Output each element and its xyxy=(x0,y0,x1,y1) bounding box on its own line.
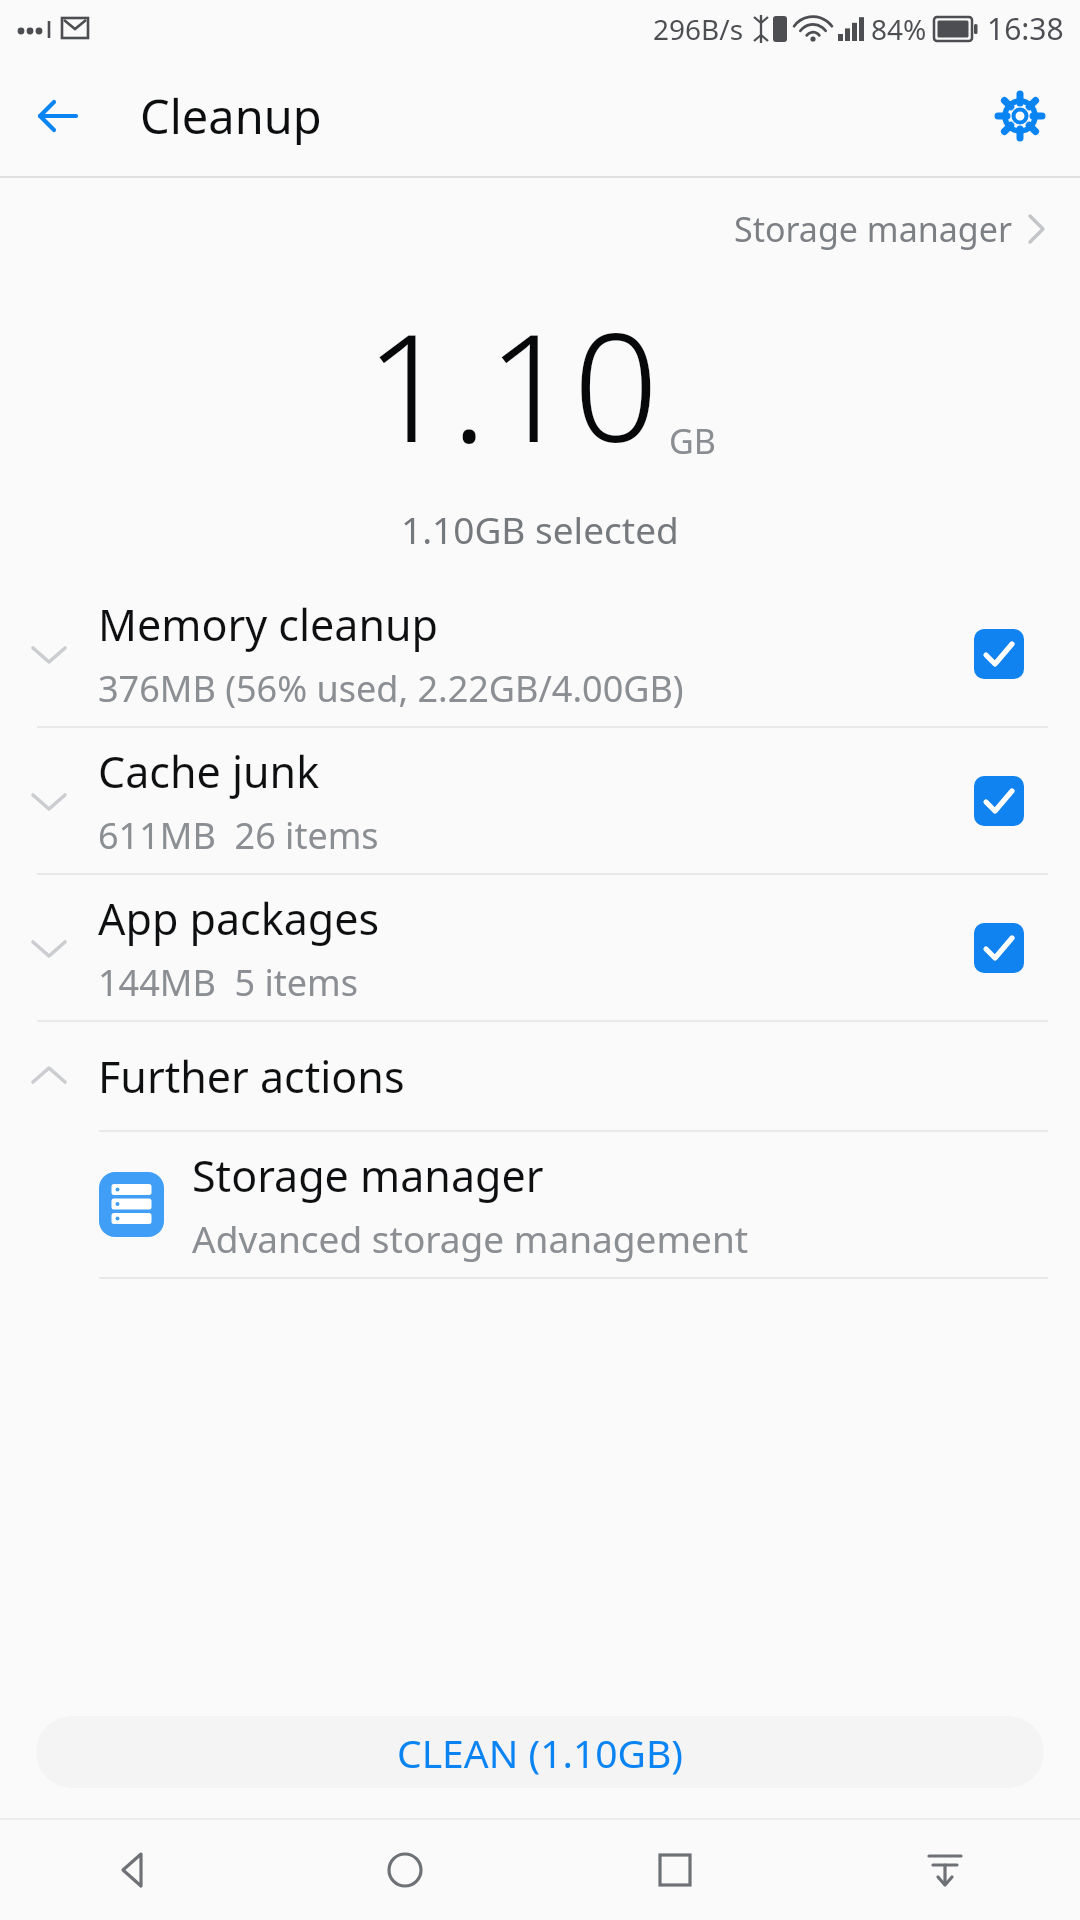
button[interactable]: Back xyxy=(0,1820,270,1920)
button[interactable]: Selected xyxy=(965,914,1033,982)
button[interactable]: Storage manager xyxy=(726,196,1056,262)
staticText: GB xyxy=(669,418,716,464)
button[interactable]: Storage manager xyxy=(0,1132,1080,1277)
staticText: Cache junk xyxy=(98,742,320,801)
button[interactable]: Cache junk xyxy=(0,728,1080,873)
staticText: 84% xyxy=(871,10,927,48)
button[interactable]: CLEAN (1.10GB) xyxy=(36,1716,1044,1788)
staticText: CLEAN (1.10GB) xyxy=(397,1726,683,1779)
staticText: 296B/s xyxy=(653,10,744,48)
button[interactable]: Hide xyxy=(810,1820,1080,1920)
button[interactable]: Selected xyxy=(965,620,1033,688)
staticText: 1.10 xyxy=(365,282,659,486)
staticText: 144MB 5 items xyxy=(98,958,358,1007)
staticText: Cleanup xyxy=(140,84,322,148)
staticText: 376MB (56% used, 2.22GB/4.00GB) xyxy=(98,664,684,713)
staticText: 611MB 26 items xyxy=(98,811,379,860)
button[interactable]: Back xyxy=(22,80,94,152)
button[interactable]: Home xyxy=(270,1820,540,1920)
staticText: Storage manager xyxy=(734,206,1012,252)
button[interactable]: Recents xyxy=(540,1820,810,1920)
staticText: Further actions xyxy=(98,1047,405,1106)
staticText: 16:38 xyxy=(987,8,1064,49)
button[interactable]: App packages xyxy=(0,875,1080,1020)
button[interactable]: Memory cleanup xyxy=(0,581,1080,726)
button[interactable]: Settings xyxy=(982,78,1058,154)
staticText: Advanced storage management xyxy=(192,1213,749,1263)
staticText: App packages xyxy=(98,889,380,948)
staticText: Memory cleanup xyxy=(98,595,439,654)
staticText: Storage manager xyxy=(192,1146,544,1205)
button[interactable]: Further actions xyxy=(0,1022,1080,1130)
button[interactable]: Selected xyxy=(965,767,1033,835)
staticText: 1.10GB selected xyxy=(401,504,679,554)
